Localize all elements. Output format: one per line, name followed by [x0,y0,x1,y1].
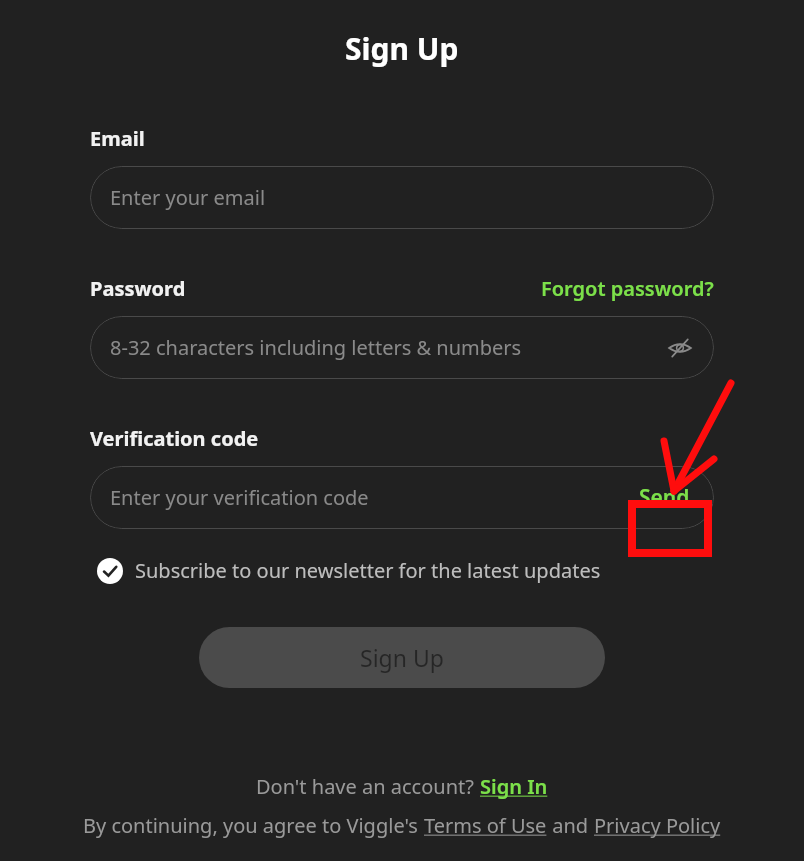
staticText: Privacy Policy [594,812,721,839]
staticText: Terms of Use [424,812,547,839]
button[interactable]: Enter your email [90,166,714,229]
button[interactable]: Show password [664,332,696,364]
button[interactable]: 8-32 characters including letters & numb… [90,316,714,379]
staticText: and [547,812,594,839]
staticText: Don't have an account? [256,773,480,800]
staticText: By continuing, you agree to Viggle's [83,812,424,839]
staticText: Subscribe to our newsletter for the late… [135,557,601,584]
button[interactable]: Send [633,483,696,512]
button[interactable]: Sign Up [199,627,605,688]
staticText: Email [90,125,145,152]
button[interactable]: Subscribe checkbox [90,553,714,588]
staticText: Verification code [90,425,259,452]
staticText: 8-32 characters including letters & numb… [110,334,664,361]
staticText: Sign In [480,773,548,800]
button[interactable]: Privacy Policy [594,812,721,839]
button[interactable]: Sign In [480,773,548,800]
staticText: Sign Up [360,642,444,673]
staticText: Sign Up [345,28,459,69]
button[interactable]: Subscribe checkbox [97,558,123,584]
button[interactable]: Forgot password? [541,275,714,302]
button[interactable]: Terms of Use [424,812,547,839]
staticText: Enter your verification code [110,484,633,511]
staticText: Enter your email [110,184,696,211]
staticText: Send [639,483,690,512]
button[interactable]: Enter your verification code [90,466,714,529]
staticText: Forgot password? [541,275,714,302]
staticText: Password [90,275,186,302]
